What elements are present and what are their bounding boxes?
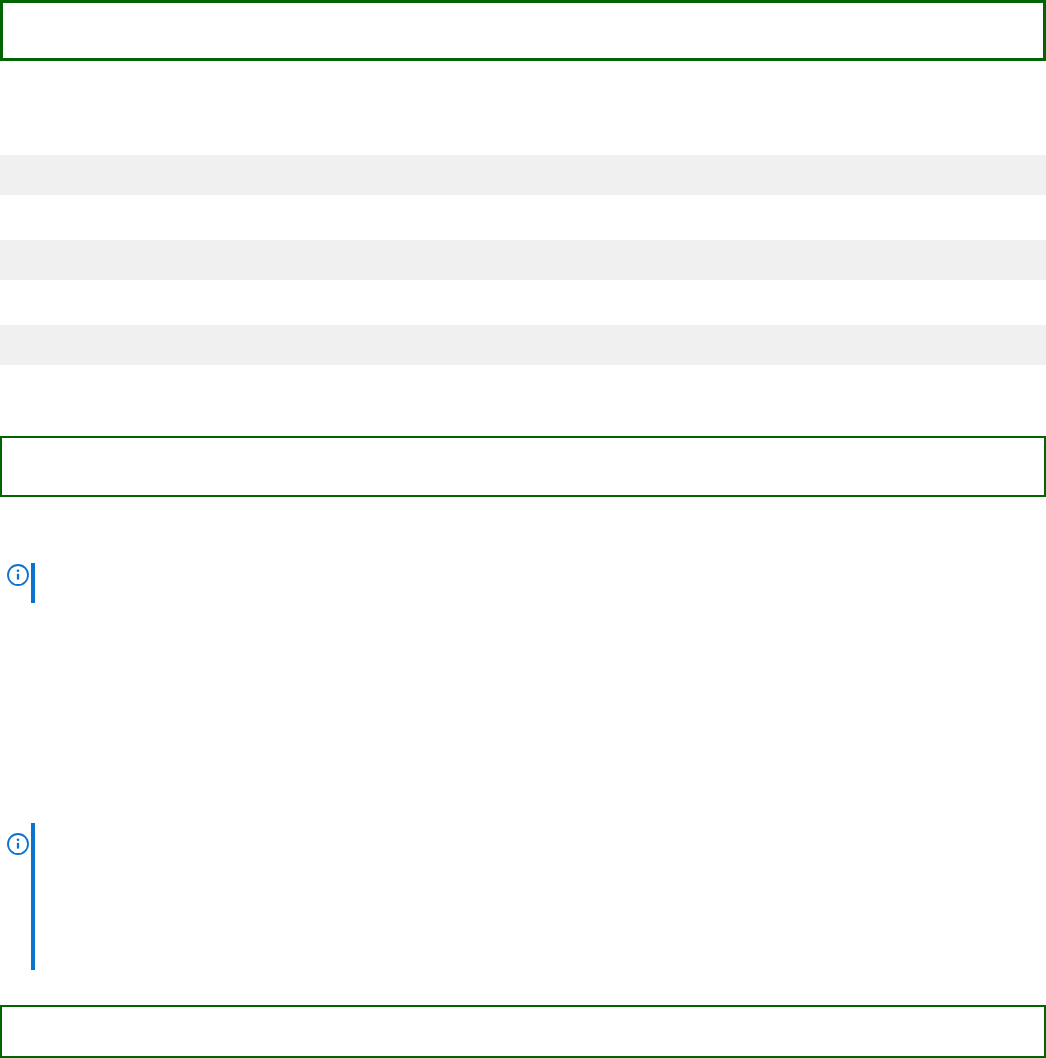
button[interactable]: Content section	[0, 436, 1046, 497]
button[interactable]: Header section	[0, 0, 1046, 61]
button[interactable]: Additional information note	[0, 823, 1046, 970]
button[interactable]: Footer section	[0, 1005, 1046, 1058]
button[interactable]: Information note	[0, 563, 1046, 603]
